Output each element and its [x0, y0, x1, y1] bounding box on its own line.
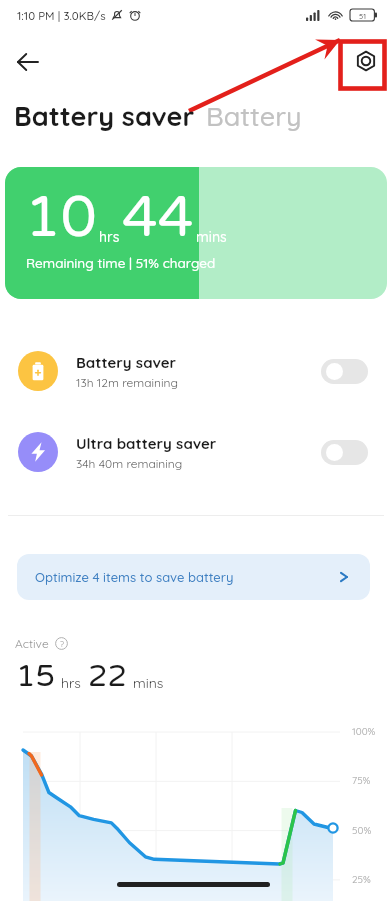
staticText: 13h 12m remaining: [76, 375, 178, 390]
staticText: 50%: [352, 824, 372, 837]
button[interactable]: Help: [55, 637, 68, 650]
staticText: 100%: [352, 725, 376, 738]
staticText: Optimize 4 items to save battery: [35, 569, 234, 585]
staticText: Remaining time | 51% charged: [26, 254, 216, 271]
staticText: 15: [16, 658, 55, 695]
button[interactable]: Toggle Battery saver: [321, 359, 368, 384]
staticText: 51: [359, 11, 366, 20]
button[interactable]: Optimize 4 items to save battery: [17, 554, 370, 600]
staticText: mins: [133, 674, 164, 692]
staticText: Active: [15, 636, 49, 651]
button[interactable]: Battery saver: [0, 351, 392, 391]
staticText: 1:10 PM | 3.0KB/s: [17, 8, 106, 22]
button[interactable]: Battery saver: [14, 99, 195, 133]
staticText: 75%: [352, 774, 371, 787]
staticText: mins: [196, 228, 227, 246]
button[interactable]: Battery: [206, 99, 302, 133]
staticText: hrs: [99, 228, 120, 246]
staticText: Battery saver: [14, 99, 195, 133]
button[interactable]: Back: [9, 43, 47, 81]
staticText: 34h 40m remaining: [76, 456, 183, 471]
staticText: 22: [88, 658, 127, 695]
staticText: Battery: [206, 99, 302, 133]
button[interactable]: 10: [5, 167, 387, 299]
staticText: ?: [60, 639, 64, 649]
button[interactable]: Toggle Ultra battery saver: [321, 440, 368, 465]
staticText: Ultra battery saver: [76, 434, 217, 453]
staticText: 10: [25, 184, 97, 253]
staticText: 25%: [352, 873, 371, 886]
button[interactable]: Settings: [348, 43, 384, 79]
staticText: hrs: [61, 674, 81, 692]
staticText: 44: [122, 184, 194, 253]
button[interactable]: Ultra battery saver: [0, 432, 392, 472]
staticText: Battery saver: [76, 353, 177, 372]
